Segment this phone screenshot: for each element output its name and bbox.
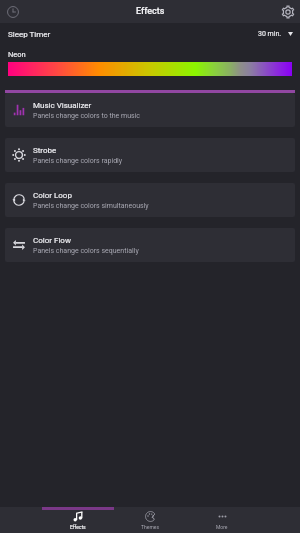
button[interactable]: Strobe: [5, 138, 295, 172]
button[interactable]: Themes: [114, 507, 186, 533]
staticText: Themes: [141, 524, 160, 530]
staticText: Color Loop: [33, 191, 72, 200]
staticText: Music Visualizer: [33, 101, 92, 110]
staticText: Effects: [136, 6, 165, 17]
button[interactable]: Sleep Timer: [0, 23, 300, 45]
button[interactable]: Music Visualizer: [5, 93, 295, 127]
button[interactable]: More: [186, 507, 258, 533]
staticText: Panels change colors simultaneously: [33, 202, 149, 210]
staticText: More: [216, 524, 228, 530]
staticText: Effects: [70, 524, 86, 530]
staticText: Sleep Timer: [8, 30, 51, 39]
button[interactable]: Color Loop: [5, 183, 295, 217]
staticText: Panels change colors rapidly: [33, 157, 123, 165]
staticText: Panels change colors sequentially: [33, 247, 139, 255]
button[interactable]: Effects: [42, 507, 114, 533]
staticText: Strobe: [33, 146, 57, 155]
staticText: Neon: [8, 50, 26, 59]
button[interactable]: Sleep timer: [3, 2, 22, 21]
staticText: Panels change colors to the music: [33, 112, 140, 120]
button[interactable]: Settings: [278, 2, 297, 21]
staticText: Color Flow: [33, 236, 71, 245]
button[interactable]: Color Flow: [5, 228, 295, 262]
staticText: 30 min.: [258, 30, 282, 38]
